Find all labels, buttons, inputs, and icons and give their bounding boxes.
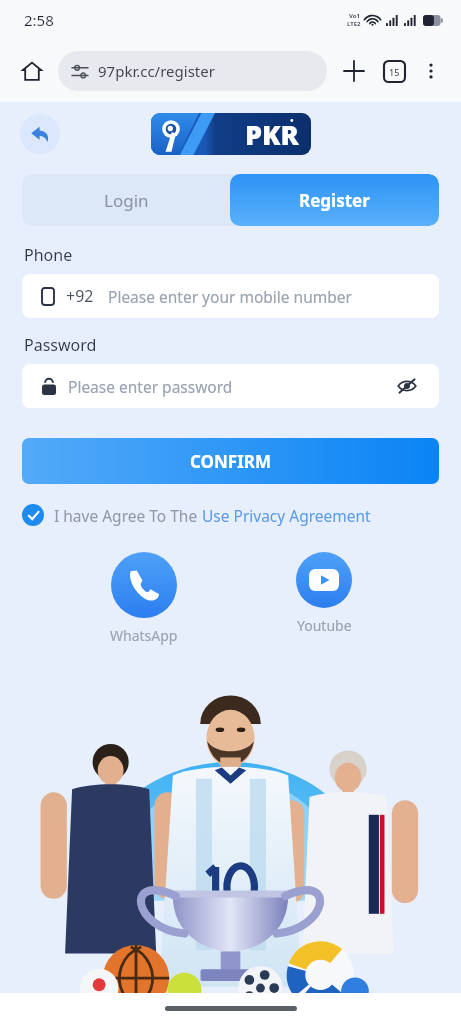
button[interactable]: Login [22,174,230,226]
button[interactable]: WhatsApp [106,548,182,649]
button[interactable]: +92 [22,274,439,318]
staticText: Youtube [297,616,352,635]
button[interactable]: Home [14,53,50,89]
staticText: 97pkr.cc/register [98,61,215,81]
button[interactable]: New tab [337,54,371,88]
staticText: Use Privacy Agreement [202,505,371,526]
button[interactable]: 97pkr.cc/register [58,51,327,91]
staticText: Login [104,189,149,212]
staticText: Phone [24,244,73,266]
button[interactable]: Register [230,174,439,226]
staticText: +92 [66,285,94,307]
button[interactable]: Show password [395,374,419,398]
staticText: WhatsApp [110,626,178,645]
staticText: Please enter your mobile number [108,286,352,307]
staticText: 15 [389,66,400,78]
staticText: Please enter password [68,376,395,397]
button[interactable]: Youtube [292,548,356,639]
staticText: CONFIRM [190,450,271,473]
button[interactable]: Please enter password [22,364,439,408]
staticText: I have Agree To The [54,505,202,526]
staticText: Register [299,189,370,212]
button[interactable]: CONFIRM [22,438,439,484]
staticText: PKR [245,116,299,153]
button[interactable]: Tabs [377,54,411,88]
button[interactable]: Back [20,114,60,154]
staticText: Vo1 [349,12,360,20]
staticText: Password [24,334,97,356]
button[interactable]: More options [415,55,447,87]
staticText: LTE2 [347,20,361,28]
button[interactable]: I have Agree To The [22,504,439,526]
staticText: 2:58 [24,10,54,30]
